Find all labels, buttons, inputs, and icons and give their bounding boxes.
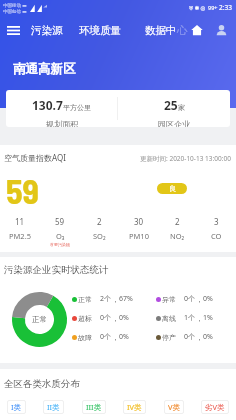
- staticText: 99+: [208, 4, 218, 11]
- staticText: 1个: [184, 313, 196, 323]
- button[interactable]: I类: [7, 400, 26, 414]
- staticText: 0个: [184, 332, 196, 342]
- staticText: 异常: [162, 295, 176, 304]
- staticText: 更新时间: 2020-10-13 13:00:00: [140, 154, 231, 163]
- button[interactable]: II类: [43, 400, 64, 414]
- button[interactable]: 劣V类: [201, 400, 229, 414]
- button[interactable]: 130.7: [6, 90, 117, 127]
- staticText: 0%: [119, 313, 129, 323]
- staticText: 停产: [162, 333, 176, 342]
- staticText: ，: [196, 314, 203, 323]
- staticText: 2: [175, 216, 180, 227]
- staticText: PM2.5: [9, 231, 31, 241]
- staticText: 空气质量指数AQI: [4, 152, 66, 163]
- staticText: PM10: [129, 231, 149, 241]
- staticText: 0%: [203, 294, 213, 304]
- staticText: 0个: [100, 313, 112, 323]
- staticText: 0个: [184, 294, 196, 304]
- staticText: 1%: [203, 313, 213, 323]
- staticText: 正常: [78, 295, 92, 304]
- staticText: IV类: [127, 402, 142, 412]
- staticText: 良: [169, 184, 176, 193]
- staticText: 园区企业: [158, 119, 190, 127]
- button[interactable]: 数据中: [145, 24, 188, 37]
- staticText: II类: [47, 402, 60, 412]
- button[interactable]: 环境质量: [79, 24, 121, 37]
- button[interactable]: Profile: [212, 21, 230, 39]
- staticText: 30: [134, 216, 144, 227]
- staticText: 平方公里: [63, 103, 91, 112]
- staticText: 59: [6, 170, 39, 211]
- staticText: 规划面积: [46, 119, 78, 127]
- staticText: 家: [178, 103, 185, 112]
- staticText: ，: [112, 333, 119, 342]
- staticText: 59: [55, 216, 65, 227]
- staticText: NO₂: [170, 231, 185, 241]
- staticText: 0%: [203, 332, 213, 342]
- button[interactable]: 25: [118, 90, 230, 127]
- staticText: ⛨ ✱ ◎: [189, 4, 206, 11]
- staticText: 中国电信 ▬: [3, 8, 27, 14]
- staticText: I类: [11, 402, 22, 412]
- staticText: 故障: [78, 333, 92, 342]
- button[interactable]: V类: [164, 400, 184, 414]
- staticText: ，: [196, 333, 203, 342]
- staticText: 首要污染物: [50, 242, 70, 247]
- staticText: 25: [164, 97, 178, 113]
- staticText: ，: [196, 295, 203, 304]
- staticText: 污染源企业实时状态统计: [4, 264, 109, 276]
- staticText: SO₂: [93, 231, 106, 241]
- staticText: 数据中: [145, 24, 177, 37]
- staticText: 3: [214, 216, 219, 227]
- staticText: V类: [168, 402, 180, 412]
- staticText: 67%: [119, 294, 133, 304]
- staticText: 心: [177, 24, 188, 37]
- button[interactable]: III类: [82, 400, 106, 414]
- staticText: 0个: [100, 332, 112, 342]
- staticText: 2: [97, 216, 102, 227]
- staticText: ，: [112, 295, 119, 304]
- staticText: 0%: [119, 332, 129, 342]
- staticText: 130.7: [32, 97, 63, 113]
- staticText: ，: [112, 314, 119, 323]
- staticText: 11: [15, 216, 25, 227]
- staticText: 劣V类: [205, 402, 225, 412]
- staticText: 全区各类水质分布: [4, 378, 80, 390]
- staticText: 南通高新区: [13, 61, 76, 77]
- staticText: III类: [86, 402, 102, 412]
- staticText: 2个: [100, 294, 112, 304]
- staticText: 超标: [78, 314, 92, 323]
- button[interactable]: 污染源: [31, 24, 63, 37]
- staticText: 2:33: [219, 3, 232, 12]
- staticText: O₃: [56, 231, 65, 241]
- button[interactable]: Menu: [0, 17, 26, 43]
- button[interactable]: IV类: [123, 400, 146, 414]
- staticText: 中国移动 ▬: [3, 2, 27, 8]
- staticText: CO: [211, 231, 222, 241]
- staticText: 离线: [162, 314, 176, 323]
- button[interactable]: Home: [188, 21, 206, 39]
- staticText: 正常: [32, 315, 47, 324]
